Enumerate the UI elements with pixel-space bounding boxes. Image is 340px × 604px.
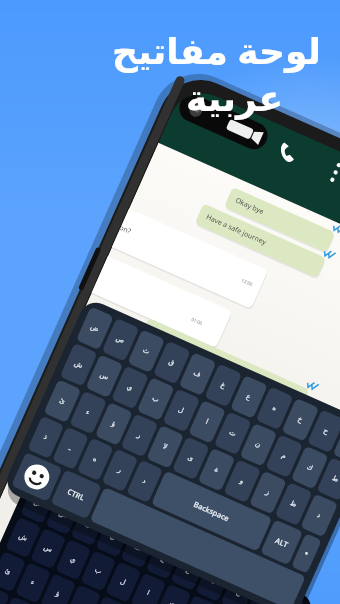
button[interactable]: Arabic Keyboard promotional screen (0, 0, 340, 604)
